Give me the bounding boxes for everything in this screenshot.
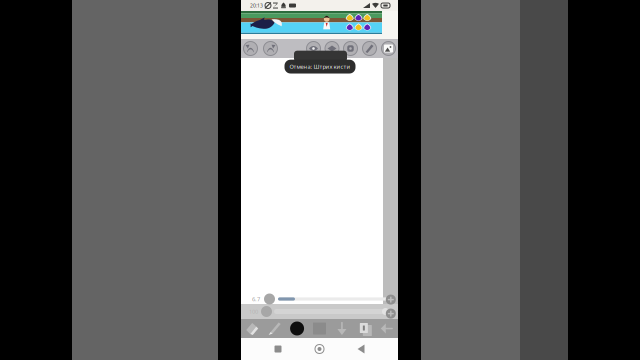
staticText: 100	[249, 308, 258, 315]
button[interactable]: Back	[376, 319, 398, 338]
button[interactable]: Fill	[331, 319, 353, 338]
staticText: 20:13	[250, 2, 263, 9]
button[interactable]: Layers	[353, 319, 375, 338]
button[interactable]: Redo	[263, 41, 277, 55]
button[interactable]: Eraser	[241, 319, 263, 338]
button[interactable]: Home	[315, 344, 324, 353]
button[interactable]: Pattern	[308, 319, 331, 338]
button[interactable]: Increase opacity	[386, 309, 396, 319]
button[interactable]: Transform	[343, 41, 357, 55]
button[interactable]: Layers	[325, 41, 339, 55]
button[interactable]: Increase brush size	[386, 295, 396, 305]
button[interactable]: Undo	[243, 41, 257, 55]
button[interactable]: Preview	[306, 41, 320, 55]
button[interactable]: Brush	[263, 319, 286, 338]
staticText: 6.7	[252, 295, 260, 303]
button[interactable]: Back	[357, 344, 364, 353]
button[interactable]: Import image	[381, 41, 395, 55]
button[interactable]: Colour	[286, 319, 308, 338]
button[interactable]: Recents	[274, 345, 281, 352]
button[interactable]: Brush	[362, 41, 376, 55]
staticText: Отмена: Штрих кисти	[289, 63, 350, 70]
